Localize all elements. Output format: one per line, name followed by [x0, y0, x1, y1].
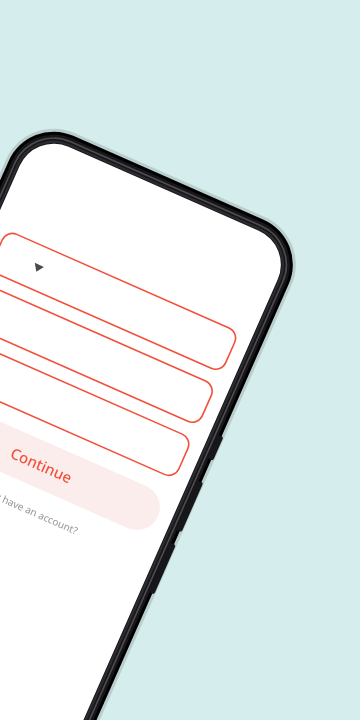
- button[interactable]: Phone mockup showing a sign-up form: [0, 0, 360, 720]
